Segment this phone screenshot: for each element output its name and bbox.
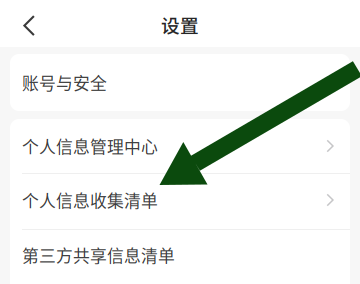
staticText: 个人信息管理中心 bbox=[22, 134, 158, 158]
staticText: 第三方共享信息清单 bbox=[22, 243, 175, 267]
staticText: 账号与安全 bbox=[22, 70, 107, 95]
button[interactable]: 个人信息管理中心 bbox=[10, 119, 350, 173]
button[interactable]: 账号与安全 bbox=[10, 54, 350, 111]
button[interactable]: 第三方共享信息清单 bbox=[10, 230, 350, 282]
button[interactable]: Back bbox=[0, 0, 35, 47]
staticText: 个人信息收集清单 bbox=[22, 188, 158, 212]
staticText: 设置 bbox=[161, 11, 199, 38]
button[interactable]: 个人信息收集清单 bbox=[10, 174, 350, 229]
